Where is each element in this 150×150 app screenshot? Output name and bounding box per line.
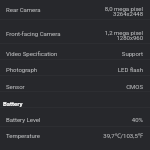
staticText: 39,7℃/103,5℉ bbox=[0, 132, 143, 140]
button[interactable] bbox=[0, 19, 150, 43]
staticText: CMOS bbox=[0, 83, 143, 90]
staticText: 1280x960 bbox=[0, 34, 143, 41]
staticText: Front-facing Camera bbox=[6, 30, 61, 37]
button[interactable] bbox=[0, 107, 150, 123]
button[interactable] bbox=[0, 0, 150, 19]
staticText: 3264x2448 bbox=[0, 10, 143, 17]
staticText: Battery Level bbox=[6, 116, 41, 123]
staticText: 8,0 mega pixel bbox=[0, 5, 143, 12]
staticText: Support bbox=[0, 50, 143, 57]
staticText: 40% bbox=[0, 116, 143, 123]
staticText: 1,2 mega pixel bbox=[0, 29, 143, 36]
staticText: Sensor bbox=[6, 83, 25, 90]
button[interactable] bbox=[0, 43, 150, 60]
staticText: LED flash bbox=[0, 66, 143, 73]
button[interactable] bbox=[0, 75, 150, 91]
staticText: Battery bbox=[3, 100, 23, 107]
staticText: Video Specification bbox=[6, 50, 58, 57]
button[interactable] bbox=[0, 59, 150, 75]
staticText: Rear Camera bbox=[6, 6, 41, 13]
staticText: Photograph bbox=[6, 66, 38, 73]
button[interactable] bbox=[0, 126, 150, 142]
staticText: Temperature bbox=[6, 132, 40, 139]
